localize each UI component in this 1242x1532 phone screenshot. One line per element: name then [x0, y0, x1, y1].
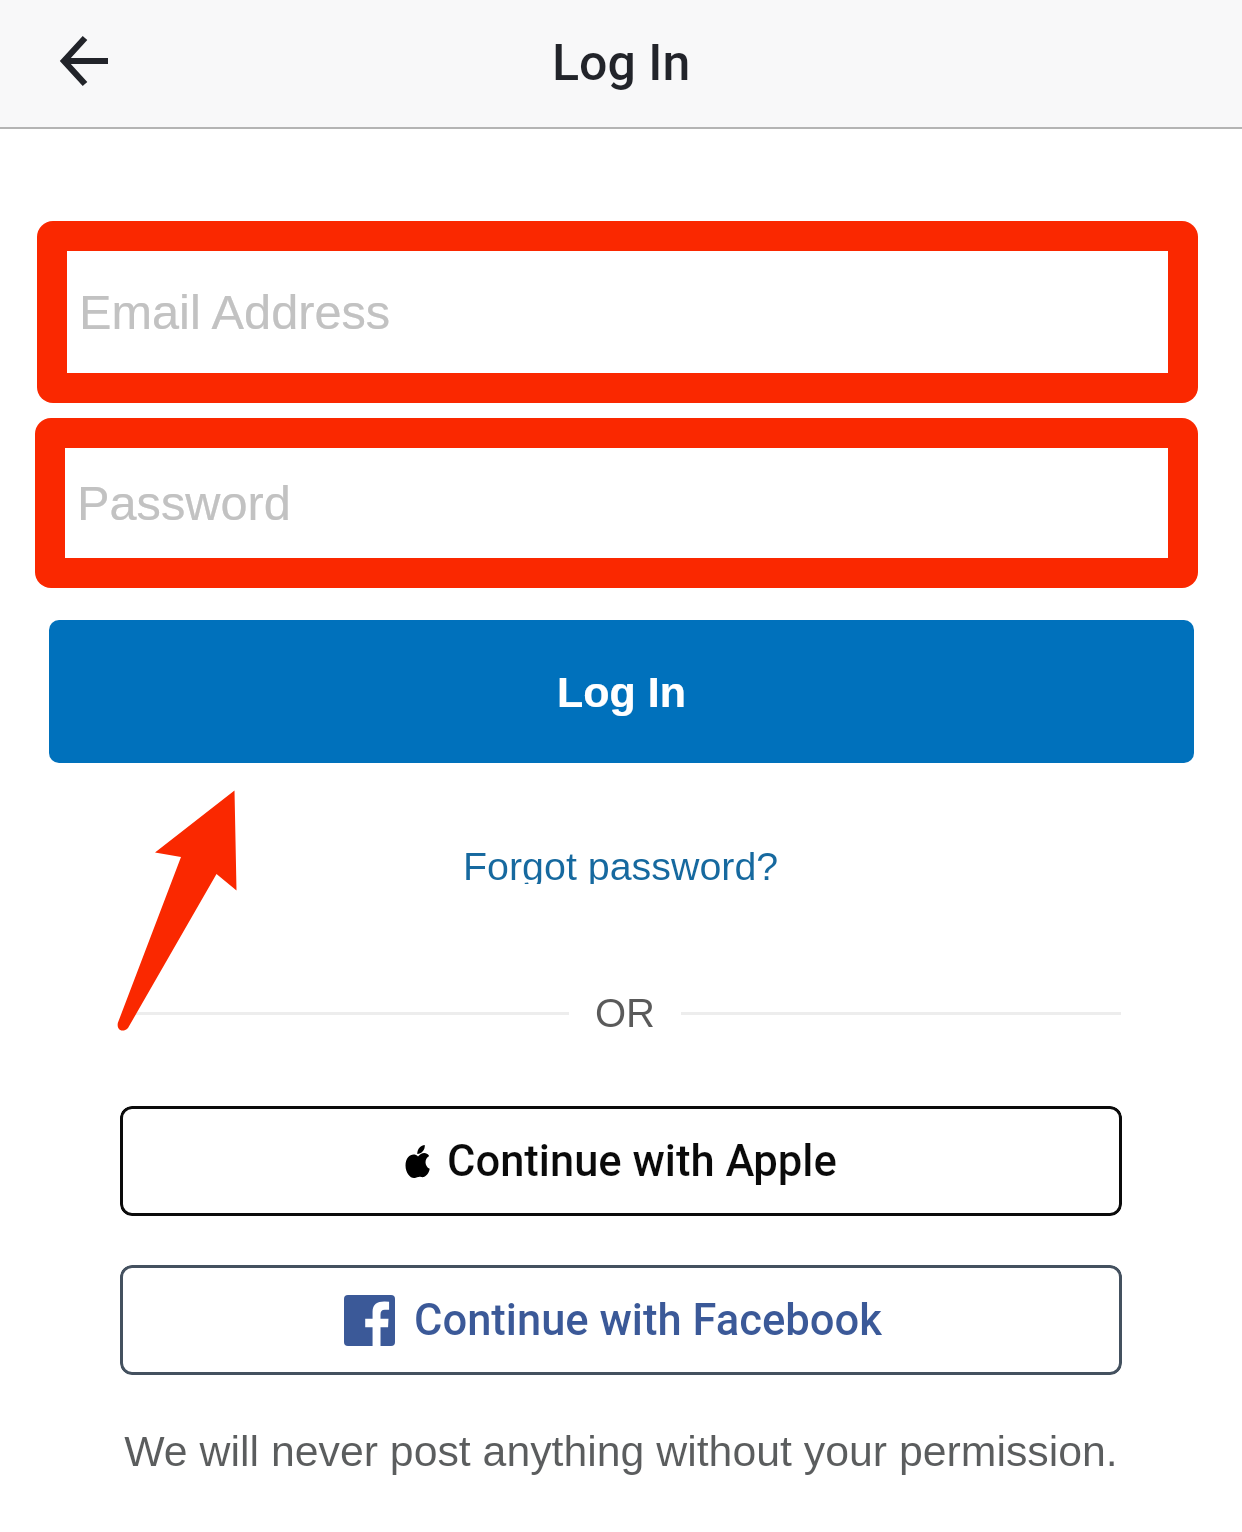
staticText: Continue with Apple	[447, 1136, 837, 1187]
staticText: Log In	[557, 668, 686, 716]
staticText: Log In	[552, 34, 691, 93]
staticText: We will never post anything without your…	[0, 1427, 1242, 1475]
staticText: Continue with Facebook	[414, 1295, 883, 1346]
staticText: Forgot password?	[463, 844, 779, 884]
button[interactable]: Continue with Facebook	[120, 1265, 1122, 1375]
staticText: OR	[595, 991, 655, 1036]
button[interactable]: Forgot password?	[447, 834, 795, 894]
button[interactable]: Log In	[49, 620, 1194, 763]
button[interactable]: Continue with Apple	[120, 1106, 1122, 1216]
button[interactable]: Email Address	[37, 221, 1198, 403]
staticText: Email Address	[79, 285, 391, 339]
button[interactable]: Back	[50, 26, 120, 96]
staticText: Password	[77, 476, 291, 530]
button[interactable]: Password	[35, 418, 1198, 588]
